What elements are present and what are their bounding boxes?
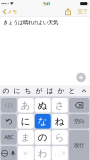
button[interactable]: の [35, 130, 51, 145]
button[interactable]: メモ [1, 7, 19, 16]
staticText: と [68, 87, 75, 95]
staticText: ABC [4, 134, 13, 141]
staticText: さ [55, 100, 65, 111]
button[interactable]: ABC [1, 130, 17, 145]
button[interactable]: は [44, 86, 55, 95]
staticText: あ [21, 100, 31, 111]
staticText: 完了 [77, 8, 87, 15]
staticText: わ [38, 148, 48, 159]
staticText: 空白 [74, 118, 84, 125]
staticText: 9:41 [43, 1, 50, 6]
staticText: に [21, 116, 31, 127]
button[interactable]: Delete [69, 98, 89, 113]
staticText: メモ [7, 8, 17, 15]
button[interactable]: 完了 [76, 7, 89, 16]
button[interactable]: が [33, 86, 44, 95]
staticText: 、。?! [54, 151, 65, 156]
button[interactable]: Return [69, 130, 89, 160]
staticText: ぬ [38, 100, 48, 111]
button[interactable]: ら [52, 130, 68, 145]
button[interactable]: の [0, 86, 11, 95]
button[interactable]: Move cursor [1, 98, 17, 113]
button[interactable]: Punctuation [52, 146, 68, 160]
staticText: が [35, 87, 42, 95]
button[interactable]: Dakuten [18, 146, 34, 160]
button[interactable]: More candidates [79, 86, 88, 95]
button[interactable]: と [66, 86, 77, 95]
staticText: な [38, 116, 48, 127]
staticText: は [46, 87, 53, 95]
button[interactable]: Input mode [1, 146, 17, 160]
button[interactable]: ね [52, 114, 68, 129]
button[interactable]: ま [18, 130, 34, 145]
staticText: の [2, 87, 9, 95]
button[interactable]: か [55, 86, 66, 95]
button[interactable]: Add attachment [76, 73, 86, 82]
button[interactable]: Space [69, 114, 89, 129]
staticText: ま [21, 132, 31, 143]
button[interactable]: ぬ [35, 98, 51, 113]
button[interactable]: わ [35, 146, 51, 160]
button[interactable]: な [35, 114, 51, 129]
staticText: に [13, 87, 20, 95]
staticText: ね [55, 116, 65, 127]
button[interactable]: あ [18, 98, 34, 113]
staticText: ら [55, 132, 65, 143]
staticText: ゛小゜ [20, 151, 32, 156]
button[interactable]: Undo [1, 114, 17, 129]
button[interactable]: ち [22, 86, 33, 95]
staticText: の [38, 132, 48, 143]
staticText: きょうは晴れのよい天気 [3, 19, 58, 26]
staticText: ち [24, 87, 31, 95]
button[interactable]: に [18, 114, 34, 129]
button[interactable]: Share [63, 7, 72, 16]
button[interactable]: さ [52, 98, 68, 113]
staticText: か [57, 87, 64, 95]
button[interactable]: に [11, 86, 22, 95]
staticText: 改行 [74, 142, 84, 149]
